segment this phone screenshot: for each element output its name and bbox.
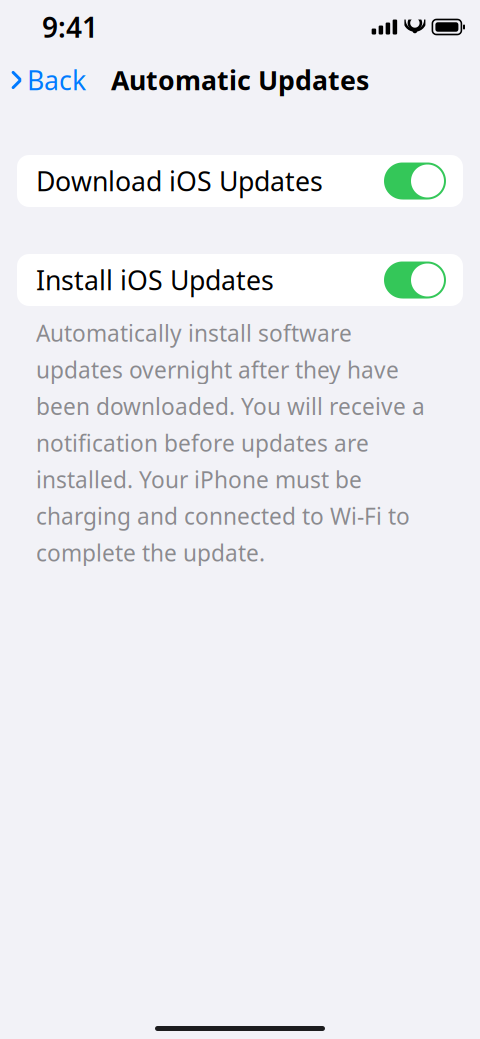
button[interactable]: Install iOS Updates: [17, 254, 463, 306]
staticText: 9:41: [42, 8, 98, 46]
staticText: Automatic Updates: [111, 62, 369, 98]
staticText: Automatically install software updates o…: [36, 318, 425, 568]
staticText: Install iOS Updates: [36, 262, 274, 298]
button[interactable]: Back: [0, 56, 94, 104]
staticText: Download iOS Updates: [36, 163, 323, 199]
button[interactable]: Download iOS Updates: [17, 155, 463, 207]
staticText: Back: [27, 62, 86, 98]
